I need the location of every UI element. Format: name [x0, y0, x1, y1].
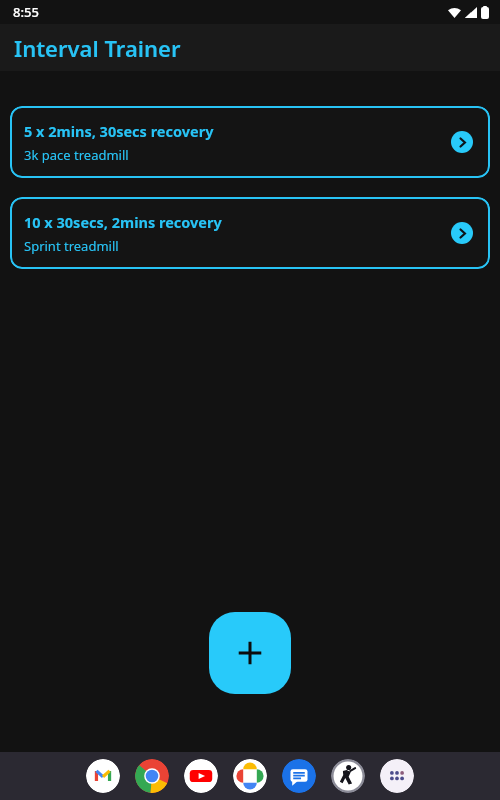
button[interactable]: 10 x 30secs, 2mins recovery: [10, 197, 490, 269]
button[interactable]: Add workout: [209, 612, 291, 694]
button[interactable]: Photos: [233, 759, 267, 793]
staticText: Sprint treadmill: [24, 237, 119, 255]
staticText: 5 x 2mins, 30secs recovery: [24, 121, 214, 141]
button[interactable]: Chrome: [135, 759, 169, 793]
button[interactable]: All apps: [380, 759, 414, 793]
button[interactable]: 5 x 2mins, 30secs recovery: [10, 106, 490, 178]
staticText: 10 x 30secs, 2mins recovery: [24, 212, 222, 232]
button[interactable]: Open workout: [451, 131, 473, 153]
button[interactable]: Gmail: [86, 759, 120, 793]
button[interactable]: Fitness: [331, 759, 365, 793]
button[interactable]: YouTube: [184, 759, 218, 793]
staticText: Interval Trainer: [14, 33, 181, 63]
staticText: 3k pace treadmill: [24, 146, 129, 164]
staticText: 8:55: [13, 3, 39, 21]
button[interactable]: Messages: [282, 759, 316, 793]
button[interactable]: Open workout: [451, 222, 473, 244]
